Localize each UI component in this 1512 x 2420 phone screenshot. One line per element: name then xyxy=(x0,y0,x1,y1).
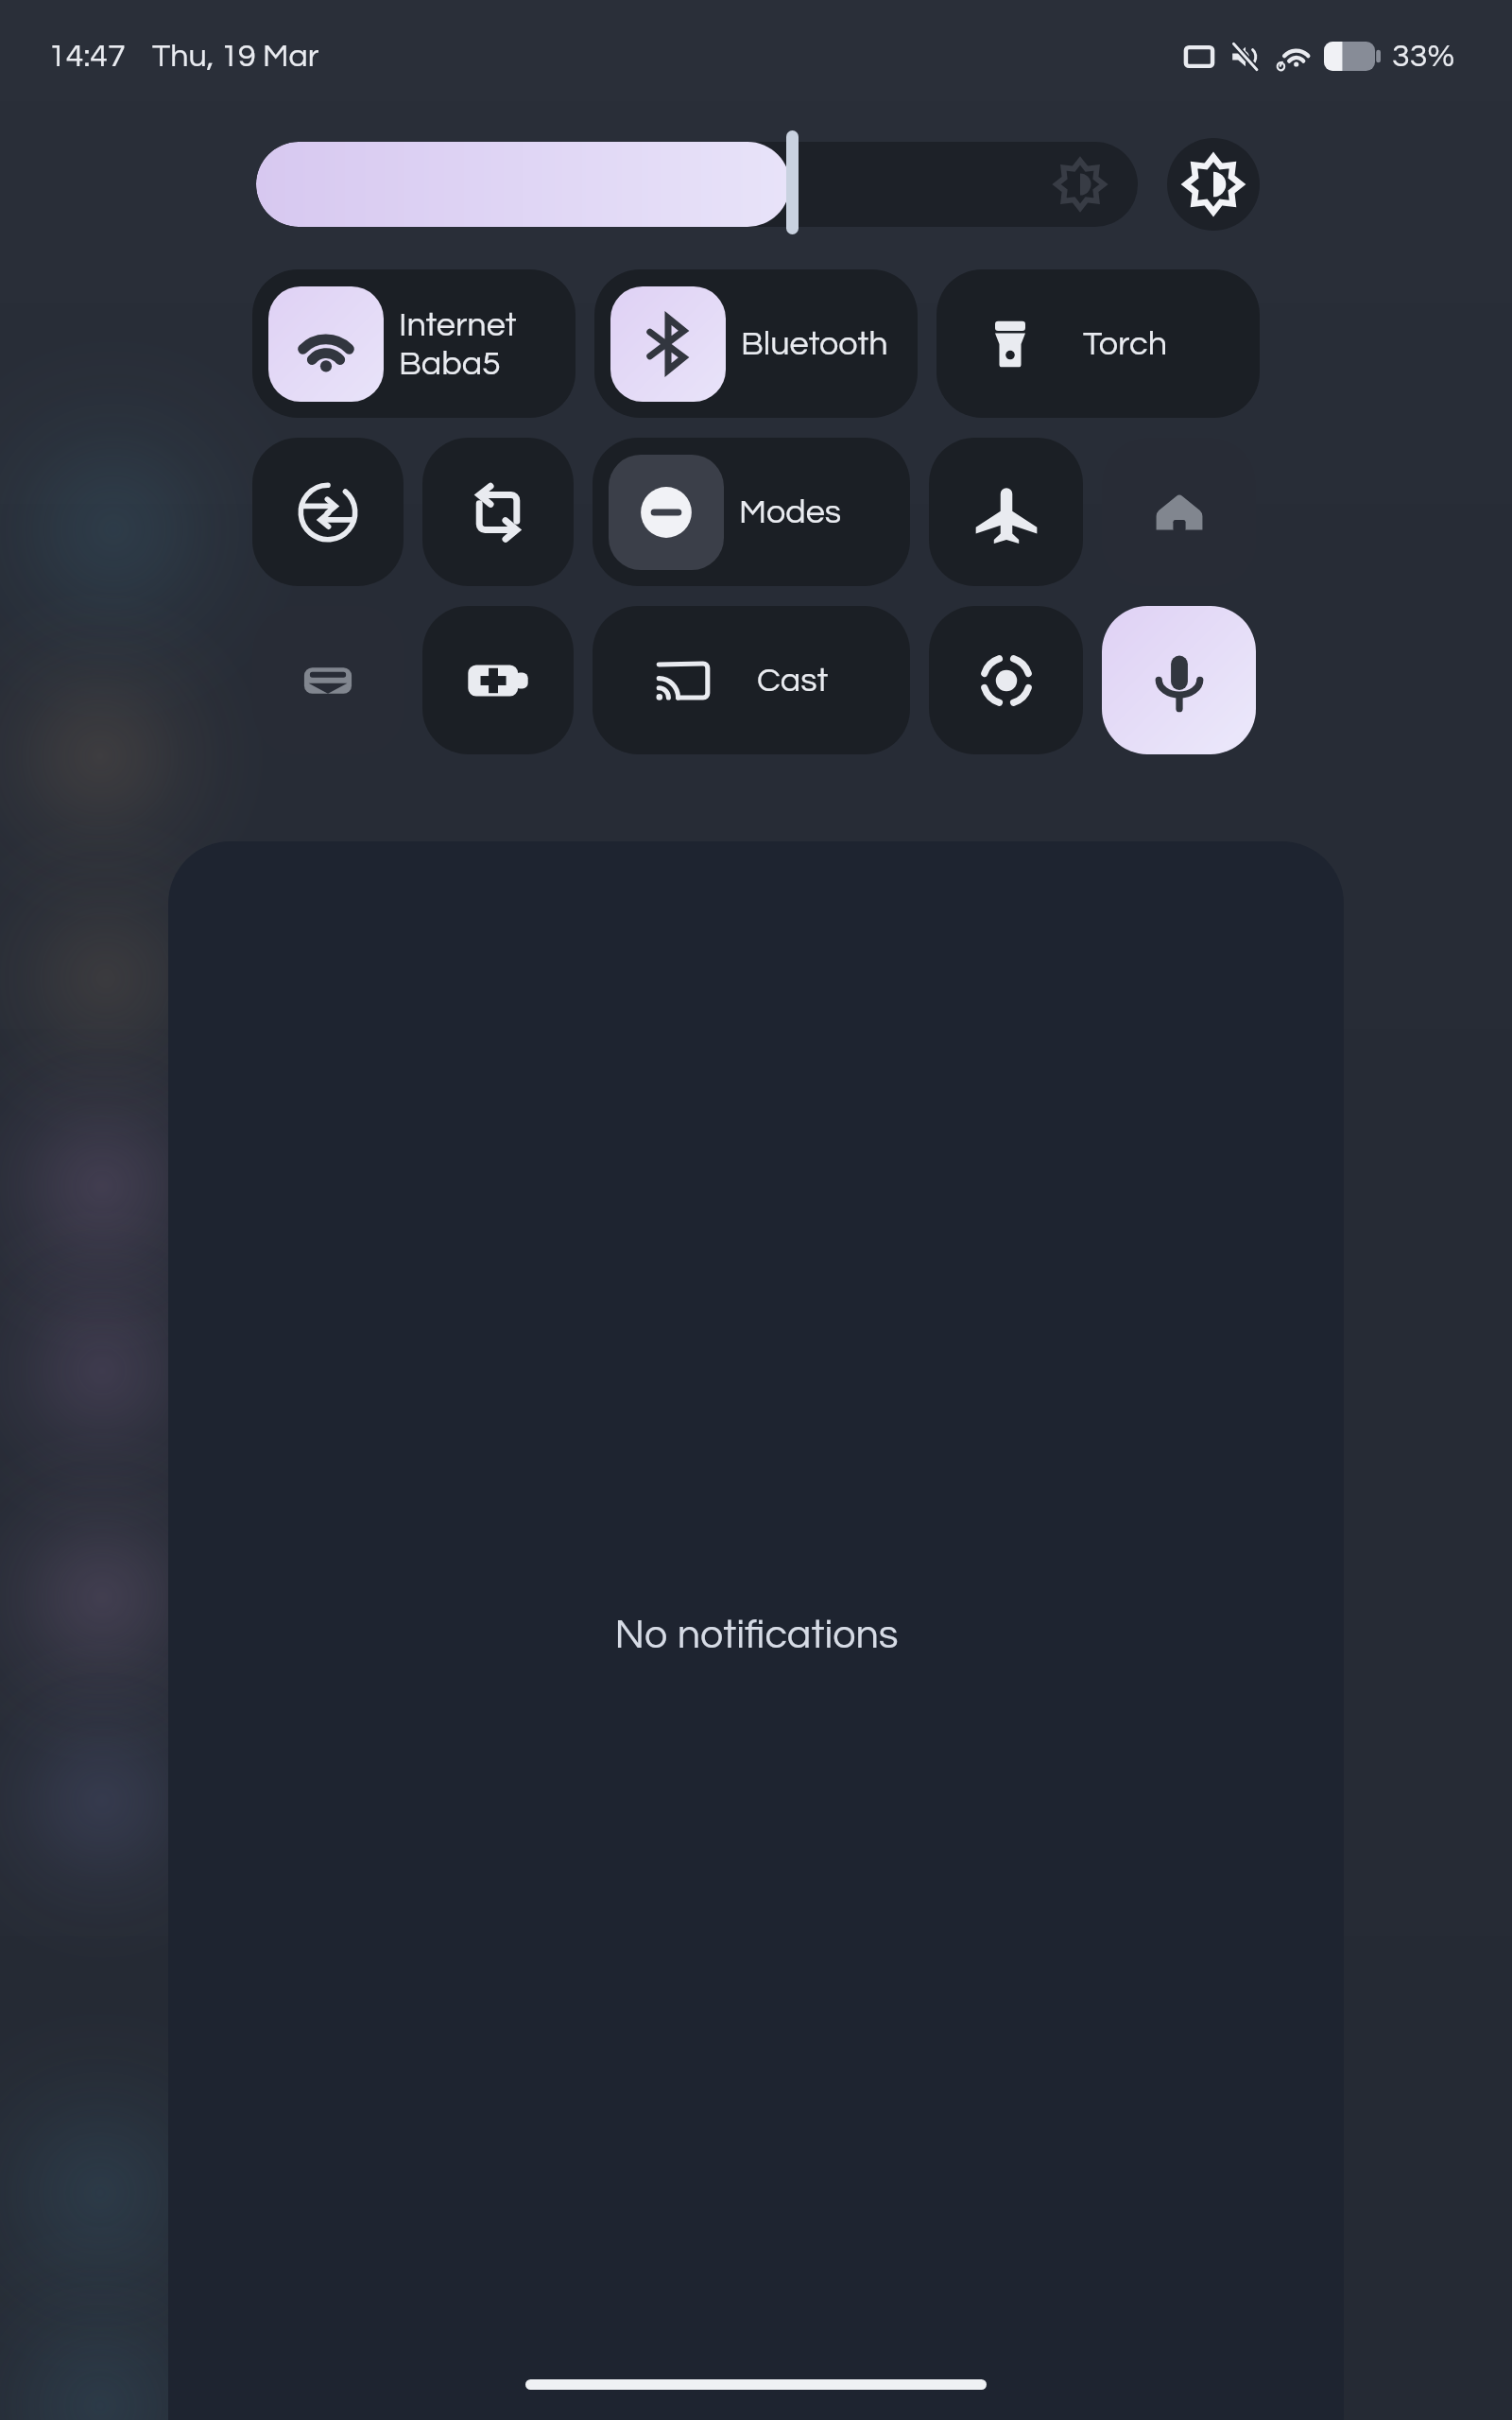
button[interactable]: Quick setting xyxy=(929,438,1083,586)
button[interactable]: Bluetooth xyxy=(594,269,918,418)
staticText: Cast xyxy=(757,663,829,698)
button[interactable]: Brightness xyxy=(256,142,1138,227)
button[interactable]: Internet xyxy=(252,269,576,418)
button[interactable]: Modes xyxy=(593,438,910,586)
button[interactable]: Auto brightness xyxy=(1167,138,1260,231)
staticText: Baba5 xyxy=(399,346,501,381)
button[interactable]: Quick setting xyxy=(252,606,404,754)
staticText: 33% xyxy=(1392,40,1455,73)
button[interactable]: Torch xyxy=(936,269,1260,418)
staticText: Modes xyxy=(739,494,842,529)
staticText: 14:47 xyxy=(48,40,126,73)
staticText: Bluetooth xyxy=(741,326,888,361)
staticText: Torch xyxy=(1083,326,1168,361)
button[interactable]: Quick setting xyxy=(1102,438,1256,586)
button[interactable]: Quick setting xyxy=(422,606,574,754)
button[interactable]: Cast xyxy=(593,606,910,754)
staticText: Thu, 19 Mar xyxy=(152,40,319,73)
staticText: No notifications xyxy=(614,1615,899,1656)
button[interactable]: Quick setting xyxy=(422,438,574,586)
button[interactable]: Quick setting xyxy=(252,438,404,586)
button[interactable]: Quick setting xyxy=(929,606,1083,754)
staticText: Internet xyxy=(399,307,517,342)
button[interactable]: Quick setting xyxy=(1102,606,1256,754)
